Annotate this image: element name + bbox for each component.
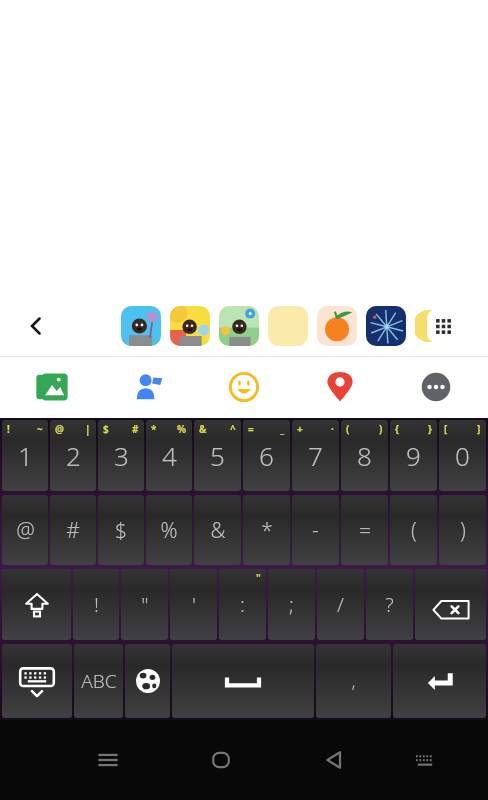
staticText: $ [115,516,127,545]
button[interactable]: Back [306,732,362,788]
button[interactable]: 4 [146,420,192,491]
button[interactable]: Gallery [4,356,100,418]
staticText: , [351,669,356,694]
button[interactable]: ; [268,569,315,640]
button[interactable]: Sticker 1 [121,306,161,346]
staticText: # [66,516,80,545]
button[interactable]: Recent apps [80,732,136,788]
staticText: = [248,422,254,436]
staticText: ) [460,516,466,545]
button[interactable]: ( [390,495,437,565]
button[interactable]: & [194,495,241,565]
button[interactable]: Home [193,732,249,788]
button[interactable]: Sticker 2 [170,306,210,346]
button[interactable]: - [292,495,339,565]
staticText: 9 [406,438,421,473]
staticText: ( [346,422,350,436]
button[interactable]: 8 [341,420,388,491]
staticText: + [297,422,303,436]
button[interactable]: Emoji [196,356,292,418]
button[interactable]: More [388,356,484,418]
staticText: · [331,422,334,436]
staticText: - [312,516,319,545]
button[interactable]: # [50,495,96,565]
button[interactable]: ) [439,495,486,565]
staticText: } [428,422,432,436]
button[interactable]: 6 [243,420,290,491]
button[interactable]: ! [73,569,119,640]
staticText: / [337,591,344,618]
staticText: : [240,591,245,618]
button[interactable]: Contacts [100,356,196,418]
staticText: ? [385,591,394,618]
staticText: 1 [18,438,33,473]
button[interactable]: : [219,569,266,640]
staticText: ( [411,516,417,545]
staticText: " [141,591,149,618]
staticText: @ [55,422,64,436]
button[interactable]: Sticker 4 [268,306,308,346]
staticText: ; [289,591,294,618]
staticText: ~ [37,422,43,436]
button[interactable]: " [121,569,168,640]
staticText: " [256,571,261,585]
button[interactable]: 7 [292,420,339,491]
button[interactable]: 1 [2,420,48,491]
staticText: 6 [259,438,274,473]
staticText: ) [379,422,383,436]
staticText: % [160,516,178,545]
staticText: 5 [210,438,225,473]
staticText: _ [280,422,285,436]
staticText: # [132,422,139,436]
button[interactable]: * [243,495,290,565]
button[interactable]: ABC [74,644,123,718]
staticText: $ [103,422,109,436]
button[interactable]: Location [292,356,388,418]
button[interactable]: = [341,495,388,565]
staticText: % [177,422,187,436]
button[interactable]: ? [366,569,413,640]
button[interactable]: Delete [415,569,486,640]
button[interactable]: Sticker 3 [219,306,259,346]
button[interactable]: Sticker 7 [415,306,455,346]
staticText: ! [7,422,10,436]
button[interactable]: $ [98,495,144,565]
button[interactable]: Enter [393,644,486,718]
button[interactable]: @ [2,495,48,565]
button[interactable]: Change language [125,644,170,718]
button[interactable]: 5 [194,420,241,491]
staticText: & [210,516,226,545]
button[interactable]: 9 [390,420,437,491]
staticText: 3 [114,438,129,473]
staticText: ! [94,591,99,618]
button[interactable]: % [146,495,192,565]
button[interactable]: 3 [98,420,144,491]
staticText: | [85,422,91,436]
button[interactable]: Hide keyboard [2,644,72,718]
staticText: 8 [357,438,372,473]
button[interactable]: / [317,569,364,640]
button[interactable]: Sticker 5 [317,306,357,346]
staticText: 0 [455,438,470,473]
button[interactable]: Space [172,644,314,718]
button[interactable]: ' [170,569,217,640]
staticText: ABC [81,668,117,694]
button[interactable]: Shift [2,569,71,640]
button[interactable]: 0 [439,420,486,491]
staticText: [ [444,422,448,436]
staticText: = [359,516,371,545]
button[interactable]: Back [16,306,56,346]
staticText: * [261,516,273,545]
staticText: ' [192,591,196,618]
staticText: 2 [66,438,81,473]
button[interactable]: Switch keyboard [397,732,453,788]
staticText: 7 [308,438,323,473]
staticText: * [151,422,157,436]
button[interactable]: 2 [50,420,96,491]
staticText: 4 [162,438,177,473]
button[interactable]: , [316,644,391,718]
button[interactable]: Sticker 6 [366,306,406,346]
staticText: ^ [230,422,236,436]
staticText: ] [477,422,481,436]
